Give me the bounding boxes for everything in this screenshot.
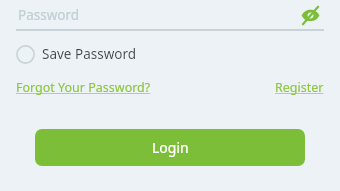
staticText: Save Password: [42, 45, 137, 63]
staticText: Login: [152, 138, 189, 157]
staticText: Forgot Your Password?: [16, 79, 151, 96]
button[interactable]: Register: [275, 79, 324, 96]
button[interactable]: Password: [0, 0, 340, 29]
button[interactable]: Forgot Your Password?: [16, 79, 151, 96]
button[interactable]: Show password: [298, 3, 322, 27]
button[interactable]: Login: [35, 129, 305, 166]
button[interactable]: Save Password: [16, 40, 147, 68]
staticText: Password: [18, 6, 80, 24]
staticText: Register: [275, 79, 324, 96]
